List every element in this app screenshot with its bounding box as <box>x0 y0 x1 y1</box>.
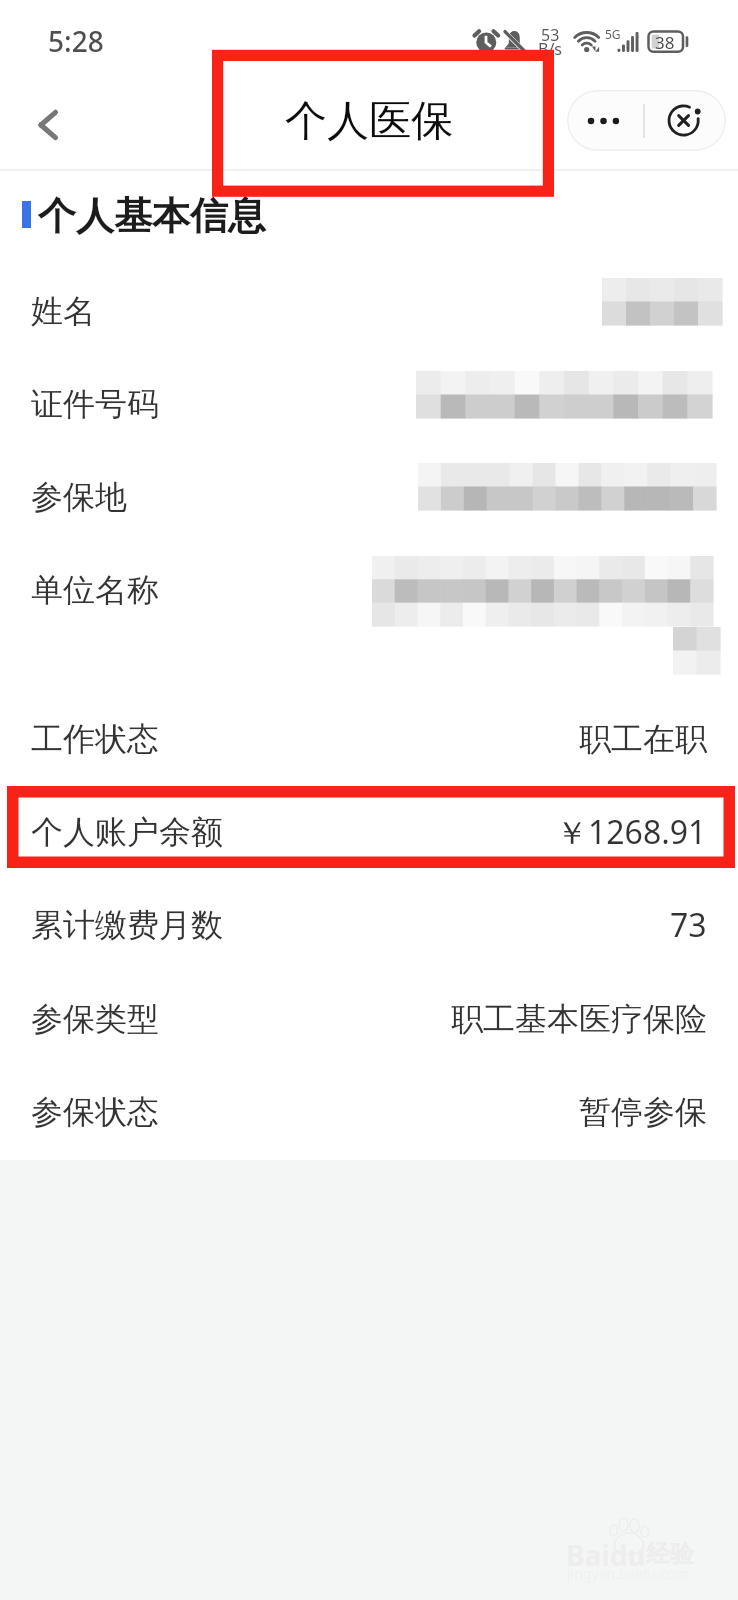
staticText: Baidu <box>566 1536 646 1574</box>
staticText: 证件号码 <box>31 384 159 424</box>
button[interactable]: 返回 <box>14 78 92 169</box>
staticText: 53 <box>541 24 560 46</box>
staticText: ￥1268.91 <box>556 810 707 854</box>
staticText: 参保类型 <box>31 999 159 1039</box>
staticText: 姓名 <box>31 291 95 331</box>
button[interactable]: 关闭 <box>644 90 726 151</box>
staticText: 暂停参保 <box>579 1092 707 1132</box>
staticText: 职工基本医疗保险 <box>451 999 707 1039</box>
staticText: 职工在职 <box>579 719 707 759</box>
button[interactable]: 累计缴费月数 <box>0 879 738 971</box>
staticText: 参保状态 <box>31 1092 159 1132</box>
staticText: 工作状态 <box>31 719 159 759</box>
staticText: 单位名称 <box>31 570 159 610</box>
staticText: 73 <box>670 903 707 947</box>
button[interactable]: 工作状态 <box>0 693 738 785</box>
button[interactable]: 更多 <box>567 90 644 151</box>
button[interactable]: 证件号码 <box>0 358 738 450</box>
staticText: 5G <box>605 26 621 42</box>
button[interactable]: 参保地 <box>0 451 738 543</box>
button[interactable]: 参保状态 <box>0 1066 738 1158</box>
staticText: 个人基本信息 <box>38 192 266 240</box>
button[interactable]: 参保类型 <box>0 973 738 1065</box>
staticText: 个人账户余额 <box>31 812 223 852</box>
staticText: 5:28 <box>48 22 104 60</box>
staticText: 38 <box>655 31 675 54</box>
staticText: 累计缴费月数 <box>31 905 223 945</box>
button[interactable]: 个人账户余额 <box>0 786 738 878</box>
staticText: B/s <box>538 38 563 60</box>
button[interactable]: 姓名 <box>0 265 738 357</box>
staticText: 个人医保 <box>285 95 453 148</box>
button[interactable]: 单位名称 <box>0 544 738 636</box>
staticText: 经验 <box>646 1539 694 1569</box>
staticText: 参保地 <box>31 477 127 517</box>
